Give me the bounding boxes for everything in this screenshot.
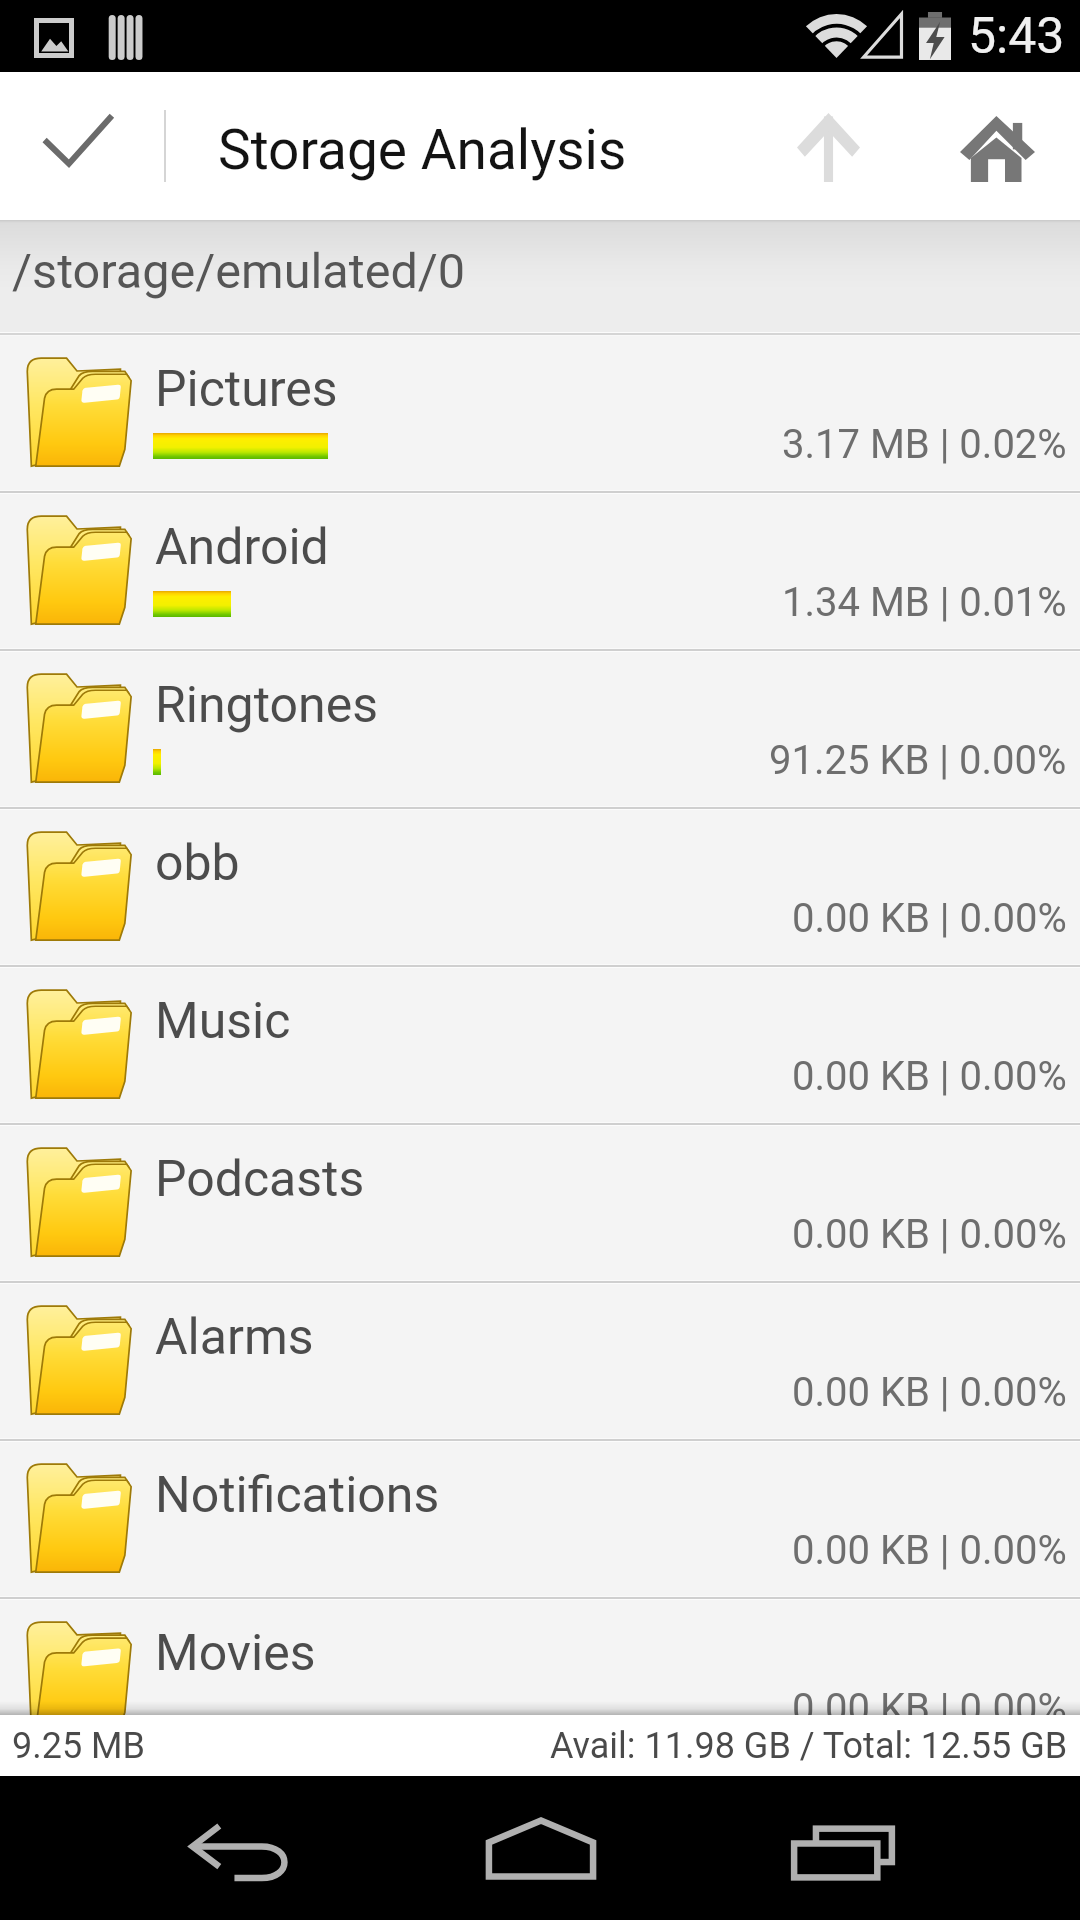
button[interactable]: Pictures	[0, 336, 1080, 494]
button[interactable]: Movies	[0, 1600, 1080, 1715]
staticText: 1.34 MB | 0.01%	[782, 579, 1067, 626]
staticText: Alarms	[155, 1308, 314, 1367]
staticText: 3.17 MB | 0.02%	[782, 421, 1067, 468]
button[interactable]: Podcasts	[0, 1126, 1080, 1284]
staticText: 91.25 KB | 0.00%	[769, 737, 1067, 784]
button[interactable]: Alarms	[0, 1284, 1080, 1442]
button[interactable]: Android	[0, 494, 1080, 652]
staticText: 0.00 KB | 0.00%	[792, 1369, 1067, 1416]
staticText: 0.00 KB | 0.00%	[792, 1053, 1067, 1100]
staticText: Pictures	[155, 360, 338, 419]
button[interactable]: Ringtones	[0, 652, 1080, 810]
staticText: Music	[155, 992, 291, 1051]
staticText: 0.00 KB | 0.00%	[792, 895, 1067, 942]
staticText: 0.00 KB | 0.00%	[792, 1211, 1067, 1258]
button[interactable]: Home	[930, 72, 1080, 220]
button[interactable]: /storage/emulated/0	[0, 220, 1080, 336]
staticText: Storage Analysis	[218, 118, 627, 182]
staticText: Avail: 11.98 GB / Total: 12.55 GB	[550, 1725, 1068, 1767]
button[interactable]: Up one level	[754, 72, 902, 220]
staticText: 5:43	[968, 7, 1065, 66]
staticText: 0.00 KB | 0.00%	[792, 1527, 1067, 1574]
staticText: Notifications	[155, 1466, 440, 1525]
staticText: Podcasts	[155, 1150, 365, 1209]
staticText: /storage/emulated/0	[12, 243, 466, 300]
button[interactable]: Recent apps	[755, 1776, 935, 1920]
button[interactable]: obb	[0, 810, 1080, 968]
staticText: obb	[155, 834, 240, 893]
button[interactable]: Done	[0, 72, 164, 220]
button[interactable]: Notifications	[0, 1442, 1080, 1600]
staticText: Movies	[155, 1624, 316, 1683]
button[interactable]: Home	[450, 1776, 630, 1920]
staticText: Android	[155, 518, 329, 577]
staticText: 0.00 KB | 0.00%	[792, 1685, 1067, 1715]
staticText: 9.25 MB	[12, 1725, 145, 1767]
button[interactable]: Back	[150, 1776, 330, 1920]
button[interactable]: Music	[0, 968, 1080, 1126]
staticText: Ringtones	[155, 676, 378, 735]
